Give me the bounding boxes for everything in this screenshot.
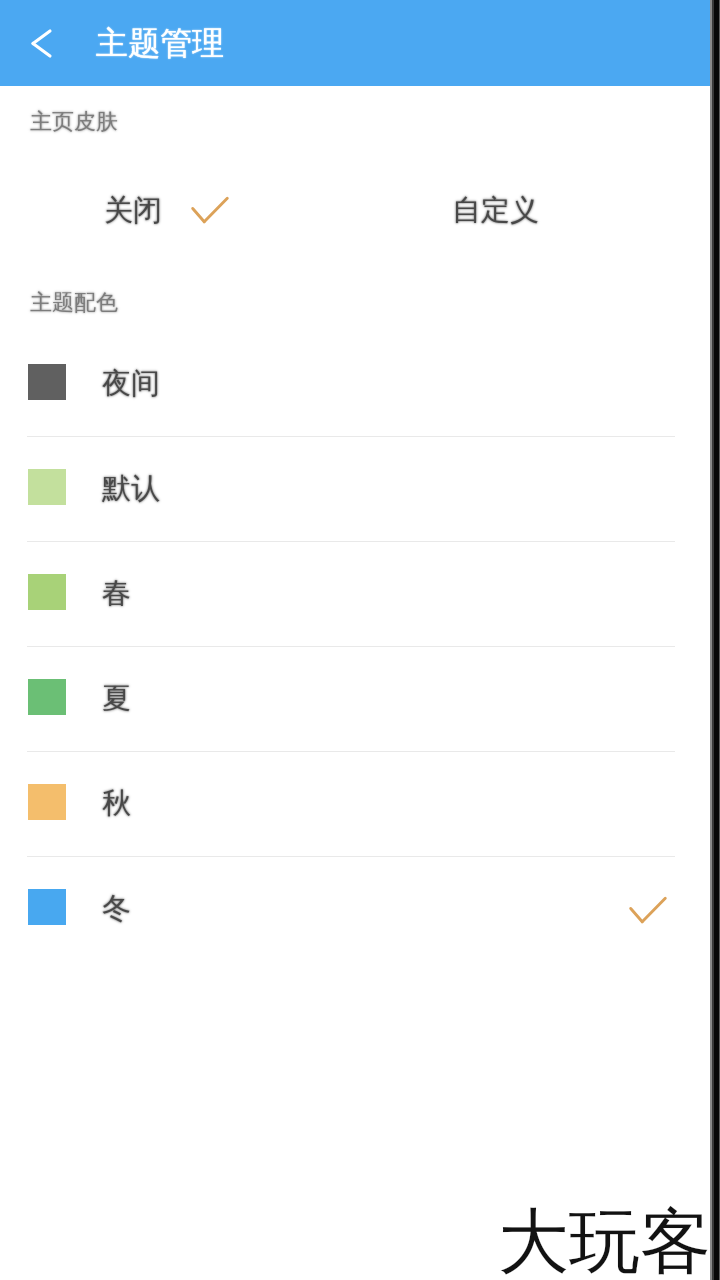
button[interactable]: 关闭	[0, 180, 228, 240]
button[interactable]: 春	[0, 542, 720, 647]
button[interactable]: 夏	[0, 647, 720, 752]
staticText: 主页皮肤	[30, 108, 118, 136]
button[interactable]: 冬	[0, 857, 720, 962]
staticText: 冬	[102, 890, 131, 927]
button[interactable]: 默认	[0, 437, 720, 542]
staticText: 夏	[102, 680, 131, 717]
button[interactable]: 夜间	[0, 332, 720, 437]
staticText: 主题管理	[96, 23, 224, 63]
button[interactable]: Back	[0, 0, 83, 86]
staticText: 夜间	[102, 365, 160, 402]
button[interactable]: 自定义	[422, 180, 569, 240]
staticText: 默认	[102, 470, 160, 507]
staticText: 主题配色	[30, 289, 118, 317]
staticText: 大玩客	[498, 1198, 711, 1280]
staticText: 自定义	[452, 192, 539, 229]
button[interactable]: 秋	[0, 752, 720, 857]
staticText: 关闭	[104, 192, 162, 229]
staticText: 春	[102, 575, 131, 612]
staticText: 秋	[102, 785, 131, 822]
